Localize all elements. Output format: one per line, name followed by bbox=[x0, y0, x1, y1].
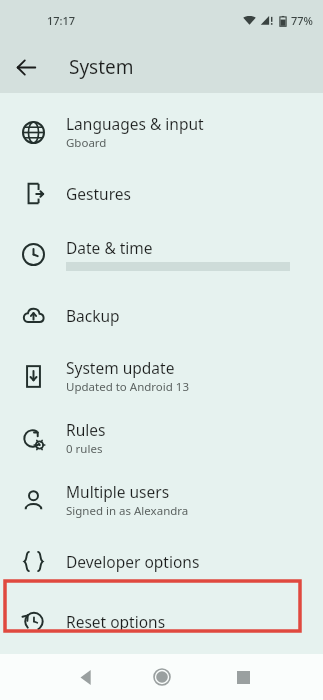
staticText: Developer options bbox=[66, 551, 200, 572]
button[interactable]: Developer options bbox=[0, 531, 323, 591]
staticText: Languages & input bbox=[66, 113, 204, 134]
button[interactable]: Languages & input bbox=[0, 101, 323, 163]
button[interactable]: Multiple users bbox=[0, 469, 323, 531]
staticText: System bbox=[69, 54, 134, 80]
button[interactable]: Back bbox=[8, 49, 44, 85]
staticText: Backup bbox=[66, 305, 120, 326]
button[interactable]: Recent apps bbox=[223, 657, 263, 697]
staticText: Reset options bbox=[66, 611, 166, 632]
button[interactable]: Reset options bbox=[0, 591, 323, 651]
button[interactable]: Backup bbox=[0, 285, 323, 345]
button[interactable]: Date & time bbox=[0, 223, 323, 285]
staticText: Rules bbox=[66, 419, 106, 440]
button[interactable]: System update bbox=[0, 345, 323, 407]
button[interactable]: Rules bbox=[0, 407, 323, 469]
staticText: 0 rules bbox=[66, 441, 103, 457]
staticText: Gboard bbox=[66, 135, 107, 151]
staticText: Signed in as Alexandra bbox=[66, 503, 189, 519]
staticText: Updated to Android 13 bbox=[66, 379, 189, 395]
staticText: Gestures bbox=[66, 183, 131, 204]
staticText: Date & time bbox=[66, 237, 153, 258]
staticText: Multiple users bbox=[66, 481, 170, 502]
button[interactable]: Home bbox=[142, 657, 182, 697]
button[interactable]: Back bbox=[66, 657, 106, 697]
staticText: 17:17 bbox=[47, 13, 76, 28]
button[interactable]: Gestures bbox=[0, 163, 323, 223]
staticText: 77% bbox=[291, 13, 313, 28]
staticText: System update bbox=[66, 357, 175, 378]
